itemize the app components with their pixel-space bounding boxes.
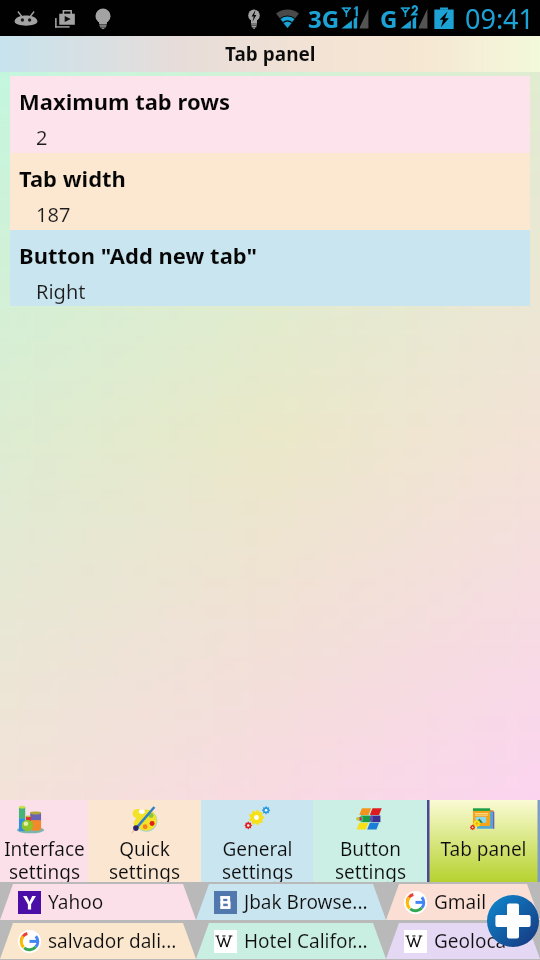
button[interactable]: Interface settings xyxy=(0,800,88,882)
staticText: Jbak Browse... xyxy=(244,889,368,915)
button[interactable]: Maximum tab rows xyxy=(10,76,530,153)
staticText: Button settings xyxy=(335,836,406,885)
staticText: Tab panel xyxy=(225,41,316,67)
staticText: Maximum tab rows xyxy=(19,86,231,116)
staticText: Hotel Califor... xyxy=(244,928,368,954)
staticText: 187 xyxy=(36,201,71,228)
button[interactable]: Button "Add new tab" xyxy=(10,230,530,306)
staticText: Yahoo xyxy=(48,889,104,915)
staticText: Right xyxy=(36,278,86,305)
staticText: salvador dali... xyxy=(48,928,177,954)
staticText: Button "Add new tab" xyxy=(19,240,258,270)
button[interactable]: Geoloca xyxy=(386,923,540,959)
button[interactable]: Jbak Browse... xyxy=(196,884,386,920)
staticText: G xyxy=(380,2,398,35)
button[interactable]: Add new tab xyxy=(487,895,539,947)
staticText: Geoloca xyxy=(434,928,507,954)
staticText: Gmail xyxy=(434,889,487,915)
button[interactable]: Hotel Califor... xyxy=(196,923,386,959)
button[interactable]: Quick settings xyxy=(88,800,201,882)
button[interactable]: Tab width xyxy=(10,153,530,230)
staticText: 3G xyxy=(308,2,340,35)
staticText: Tab panel xyxy=(440,836,527,862)
button[interactable]: salvador dali... xyxy=(0,923,196,959)
button[interactable]: General settings xyxy=(201,800,313,882)
button[interactable]: Tab panel xyxy=(427,800,540,882)
staticText: Quick settings xyxy=(109,836,180,885)
staticText: Tab width xyxy=(19,163,126,193)
button[interactable]: Gmail xyxy=(386,884,540,920)
staticText: 09:41 xyxy=(465,0,535,36)
button[interactable]: Button settings xyxy=(313,800,427,882)
button[interactable]: Yahoo xyxy=(0,884,196,920)
staticText: 2 xyxy=(36,124,48,151)
staticText: General settings xyxy=(222,836,293,885)
staticText: Interface settings xyxy=(4,836,85,885)
